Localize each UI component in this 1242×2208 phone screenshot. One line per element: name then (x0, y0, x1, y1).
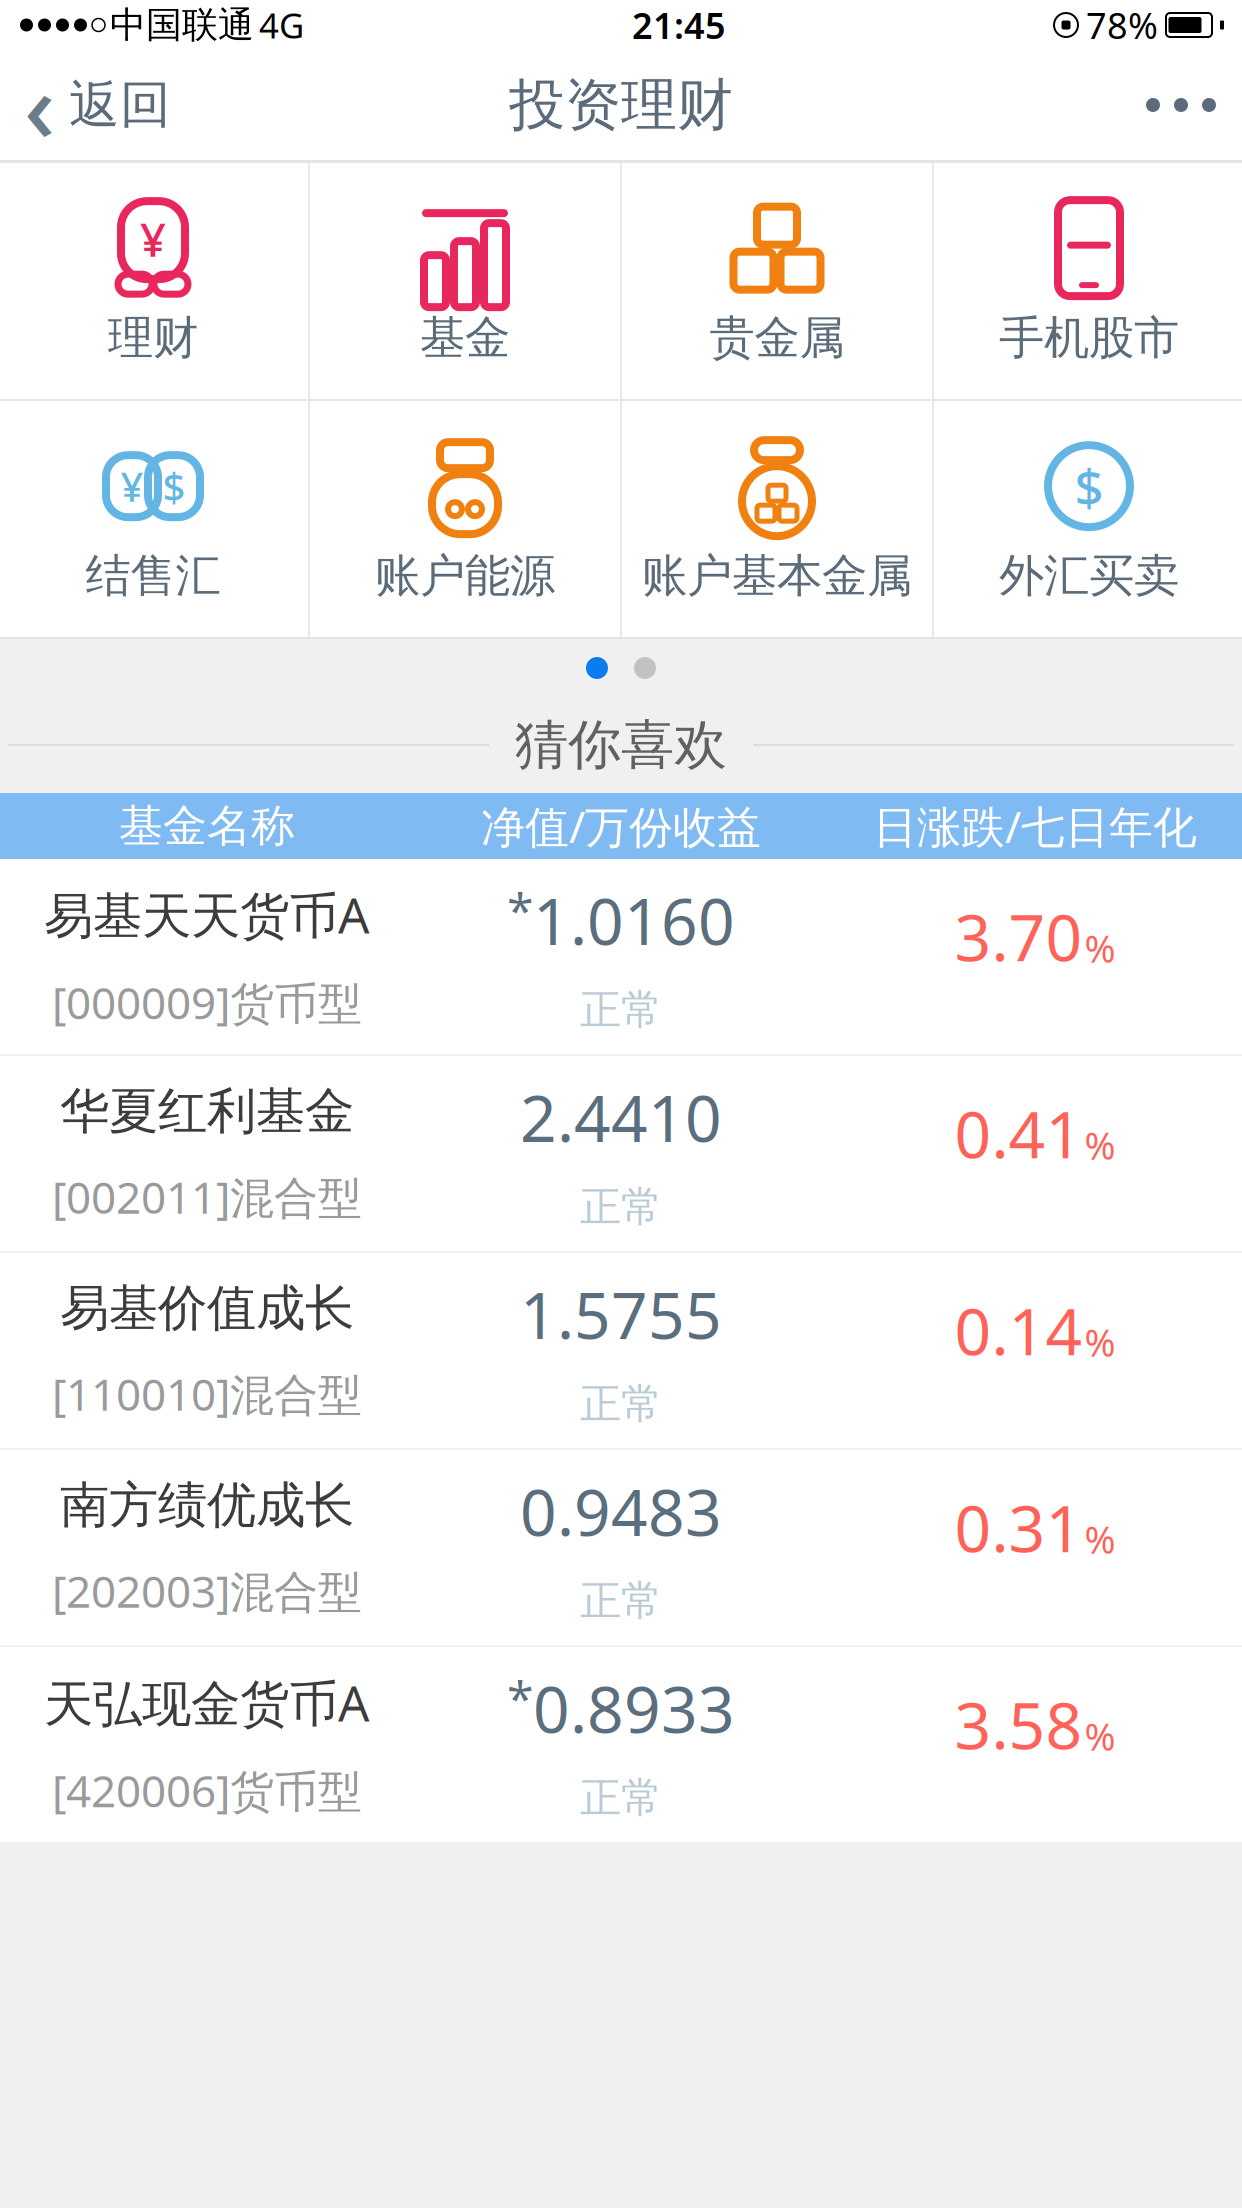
staticText: * (507, 878, 533, 941)
staticText: 中国联通 (110, 3, 254, 47)
staticText: $ (1074, 452, 1103, 520)
staticText: 华夏红利基金 (60, 1081, 354, 1142)
staticText: 正常 (580, 985, 662, 1035)
staticText: 基金名称 (119, 799, 295, 853)
staticText: 日涨跌/七日年化 (873, 797, 1197, 855)
staticText: 易基价值成长 (60, 1278, 354, 1339)
staticText: ¥ (120, 460, 143, 513)
button[interactable]: 易基天天货币A (0, 859, 1242, 1054)
staticText: % (1084, 1120, 1115, 1170)
button[interactable]: 基金 (310, 163, 620, 399)
staticText: 3.58 (954, 1682, 1082, 1767)
staticText: 正常 (580, 1773, 662, 1823)
button[interactable]: 手机股市 (934, 163, 1242, 399)
button[interactable]: 天弘现金货币A (0, 1647, 1242, 1842)
staticText: 0.9483 (520, 1469, 722, 1554)
staticText: [202003]混合型 (52, 1562, 362, 1620)
button[interactable]: ¥ (0, 163, 308, 399)
staticText: 0.31 (954, 1485, 1082, 1570)
staticText: 账户能源 (375, 548, 555, 604)
staticText: 1.5755 (520, 1272, 722, 1357)
staticText: [110010]混合型 (52, 1365, 362, 1423)
staticText: * (507, 1666, 533, 1729)
button[interactable]: ‹ (0, 50, 189, 160)
staticText: 天弘现金货币A (44, 1669, 370, 1735)
staticText: 正常 (580, 1379, 662, 1429)
staticText: % (1084, 1317, 1115, 1367)
staticText: 账户基本金属 (642, 548, 912, 604)
staticText: 净值/万份收益 (481, 797, 761, 855)
staticText: 贵金属 (709, 310, 844, 366)
staticText: % (1084, 923, 1115, 973)
staticText: 猜你喜欢 (515, 712, 727, 778)
staticText: 0.8933 (533, 1666, 735, 1751)
staticText: 3.70 (954, 894, 1082, 979)
staticText: 78% (1086, 1, 1158, 49)
staticText: [000009]货币型 (52, 973, 362, 1031)
staticText: $ (162, 460, 185, 513)
staticText: 正常 (580, 1576, 662, 1626)
staticText: 0.14 (954, 1288, 1082, 1373)
staticText: ‹ (24, 41, 55, 169)
staticText: 理财 (108, 310, 198, 366)
button[interactable]: ¥ (0, 401, 308, 637)
button[interactable]: More options (1118, 50, 1242, 160)
button[interactable]: $ (934, 401, 1242, 637)
staticText: [002011]混合型 (52, 1168, 362, 1226)
staticText: 21:45 (632, 1, 726, 49)
button[interactable]: 易基价值成长 (0, 1253, 1242, 1448)
button[interactable]: 账户基本金属 (622, 401, 932, 637)
staticText: ¥ (140, 209, 166, 269)
button[interactable]: 南方绩优成长 (0, 1450, 1242, 1645)
staticText: 1.0160 (533, 878, 735, 963)
staticText: % (1084, 1514, 1115, 1564)
button[interactable]: 账户能源 (310, 401, 620, 637)
staticText: 正常 (580, 1182, 662, 1232)
staticText: 外汇买卖 (999, 548, 1179, 604)
staticText: 南方绩优成长 (60, 1475, 354, 1536)
staticText: [420006]货币型 (52, 1761, 362, 1819)
staticText: 投资理财 (509, 71, 733, 139)
staticText: % (1084, 1711, 1115, 1761)
staticText: 4G (259, 2, 304, 48)
button[interactable]: 贵金属 (622, 163, 932, 399)
staticText: 返回 (69, 74, 171, 136)
staticText: 0.41 (954, 1091, 1082, 1176)
staticText: 2.4410 (520, 1075, 722, 1160)
staticText: 基金 (420, 310, 510, 366)
button[interactable]: 华夏红利基金 (0, 1056, 1242, 1251)
staticText: 易基天天货币A (44, 881, 370, 947)
staticText: 手机股市 (999, 310, 1179, 366)
staticText: 结售汇 (85, 548, 220, 604)
